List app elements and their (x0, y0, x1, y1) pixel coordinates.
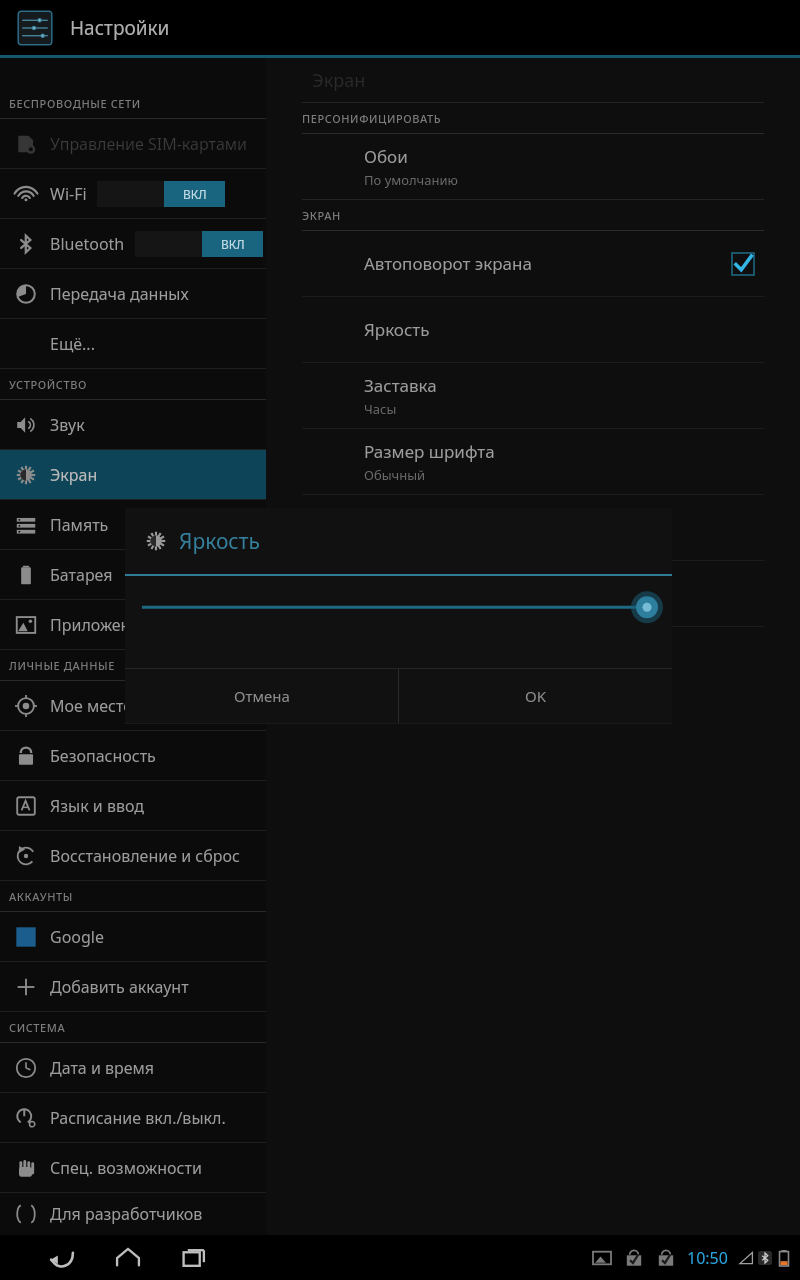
button[interactable]: Звук (0, 400, 266, 449)
button[interactable]: Приложения (0, 600, 266, 649)
staticText: По умолчанию (364, 171, 458, 189)
staticText: Батарея (50, 564, 113, 586)
staticText: УСТРОЙСТВО (9, 377, 88, 392)
staticText: ПЕРСОНИФИЦИРОВАТЬ (302, 111, 442, 126)
staticText: Обои (364, 145, 408, 168)
button[interactable]: Автоповорот экрана (302, 231, 764, 296)
staticText: Ещё... (50, 333, 95, 355)
button[interactable]: Недавние приложения (170, 1235, 218, 1280)
staticText: Язык и ввод (50, 795, 145, 817)
button[interactable]: Wi-Fi (0, 169, 266, 218)
button[interactable]: Настройки (0, 0, 800, 55)
button[interactable]: Экран (0, 450, 266, 499)
staticText: Память (50, 514, 109, 536)
staticText: Bluetooth (50, 233, 125, 255)
staticText: Экран (312, 68, 366, 93)
staticText: Часы (364, 400, 397, 418)
button[interactable]: OK (399, 669, 672, 723)
staticText: ЛИЧНЫЕ ДАННЫЕ (9, 658, 115, 673)
staticText: ВКЛ (221, 236, 245, 252)
button[interactable]: Управление SIM-картами (0, 119, 266, 168)
staticText: Яркость (364, 318, 430, 341)
button[interactable]: Google (0, 912, 266, 961)
button[interactable]: Переключатель (97, 181, 225, 207)
staticText: Автоповорот экрана (364, 252, 532, 275)
staticText: ВКЛ (183, 186, 207, 202)
staticText: ЭКРАН (302, 208, 341, 223)
button[interactable]: Автоповорот экрана (732, 253, 754, 275)
button[interactable]: Ползунок яркости (142, 576, 655, 636)
staticText: Безопасность (50, 745, 156, 767)
staticText: Расписание вкл./выкл. питания (50, 1107, 266, 1129)
staticText: Настройки (70, 15, 170, 41)
button[interactable]: Беспроводной монитор (302, 561, 764, 626)
staticText: OK (525, 686, 547, 706)
staticText: Отмена (234, 686, 290, 706)
button[interactable]: Переключатель (135, 231, 263, 257)
button[interactable]: Ещё... (0, 319, 266, 368)
button[interactable]: Язык и ввод (0, 781, 266, 830)
button[interactable]: Мое местоположение (0, 681, 266, 730)
staticText: Звук (50, 414, 85, 436)
staticText: Размер шрифта (364, 440, 495, 463)
button[interactable]: Яркость (302, 297, 764, 362)
staticText: Восстановление и сброс (50, 845, 240, 867)
button[interactable]: Главный экран (104, 1235, 152, 1280)
button[interactable]: Дата и время (0, 1043, 266, 1092)
staticText: Google (50, 926, 105, 948)
button[interactable]: Bluetooth (0, 219, 266, 268)
button[interactable]: Заставка (302, 363, 764, 428)
staticText: Передача данных (50, 283, 189, 305)
button[interactable]: Отмена (125, 669, 398, 723)
staticText: 10:50 (687, 1247, 728, 1269)
staticText: Для разработчиков (50, 1203, 203, 1225)
staticText: Яркость (179, 527, 260, 556)
button[interactable]: Восстановление и сброс (0, 831, 266, 880)
button[interactable]: Размер шрифта (302, 429, 764, 494)
button[interactable]: Батарея (0, 550, 266, 599)
staticText: Заставка (364, 374, 437, 397)
staticText: Обычный (364, 466, 426, 484)
button[interactable]: Назад (38, 1235, 86, 1280)
button[interactable]: Безопасность (0, 731, 266, 780)
staticText: Добавить аккаунт (50, 976, 189, 998)
staticText: Приложения (50, 614, 150, 636)
staticText: Спец. возможности (50, 1157, 202, 1179)
button[interactable]: Передача данных (0, 269, 266, 318)
staticText: АККАУНТЫ (9, 889, 73, 904)
staticText: Управление SIM-картами (50, 133, 248, 155)
staticText: БЕСПРОВОДНЫЕ СЕТИ (9, 96, 141, 111)
button[interactable]: Для разработчиков (0, 1193, 266, 1235)
staticText: Мое местоположение (50, 695, 220, 717)
staticText: СИСТЕМА (9, 1020, 66, 1035)
button[interactable]: Спец. возможности (0, 1143, 266, 1192)
staticText: Экран (50, 464, 98, 486)
staticText: Wi-Fi (50, 183, 87, 205)
button[interactable]: Добавить аккаунт (0, 962, 266, 1011)
button[interactable]: Память (0, 500, 266, 549)
button[interactable]: Расписание вкл./выкл. питания (0, 1093, 266, 1142)
staticText: Дата и время (50, 1057, 155, 1079)
button[interactable]: Обои (302, 134, 764, 199)
